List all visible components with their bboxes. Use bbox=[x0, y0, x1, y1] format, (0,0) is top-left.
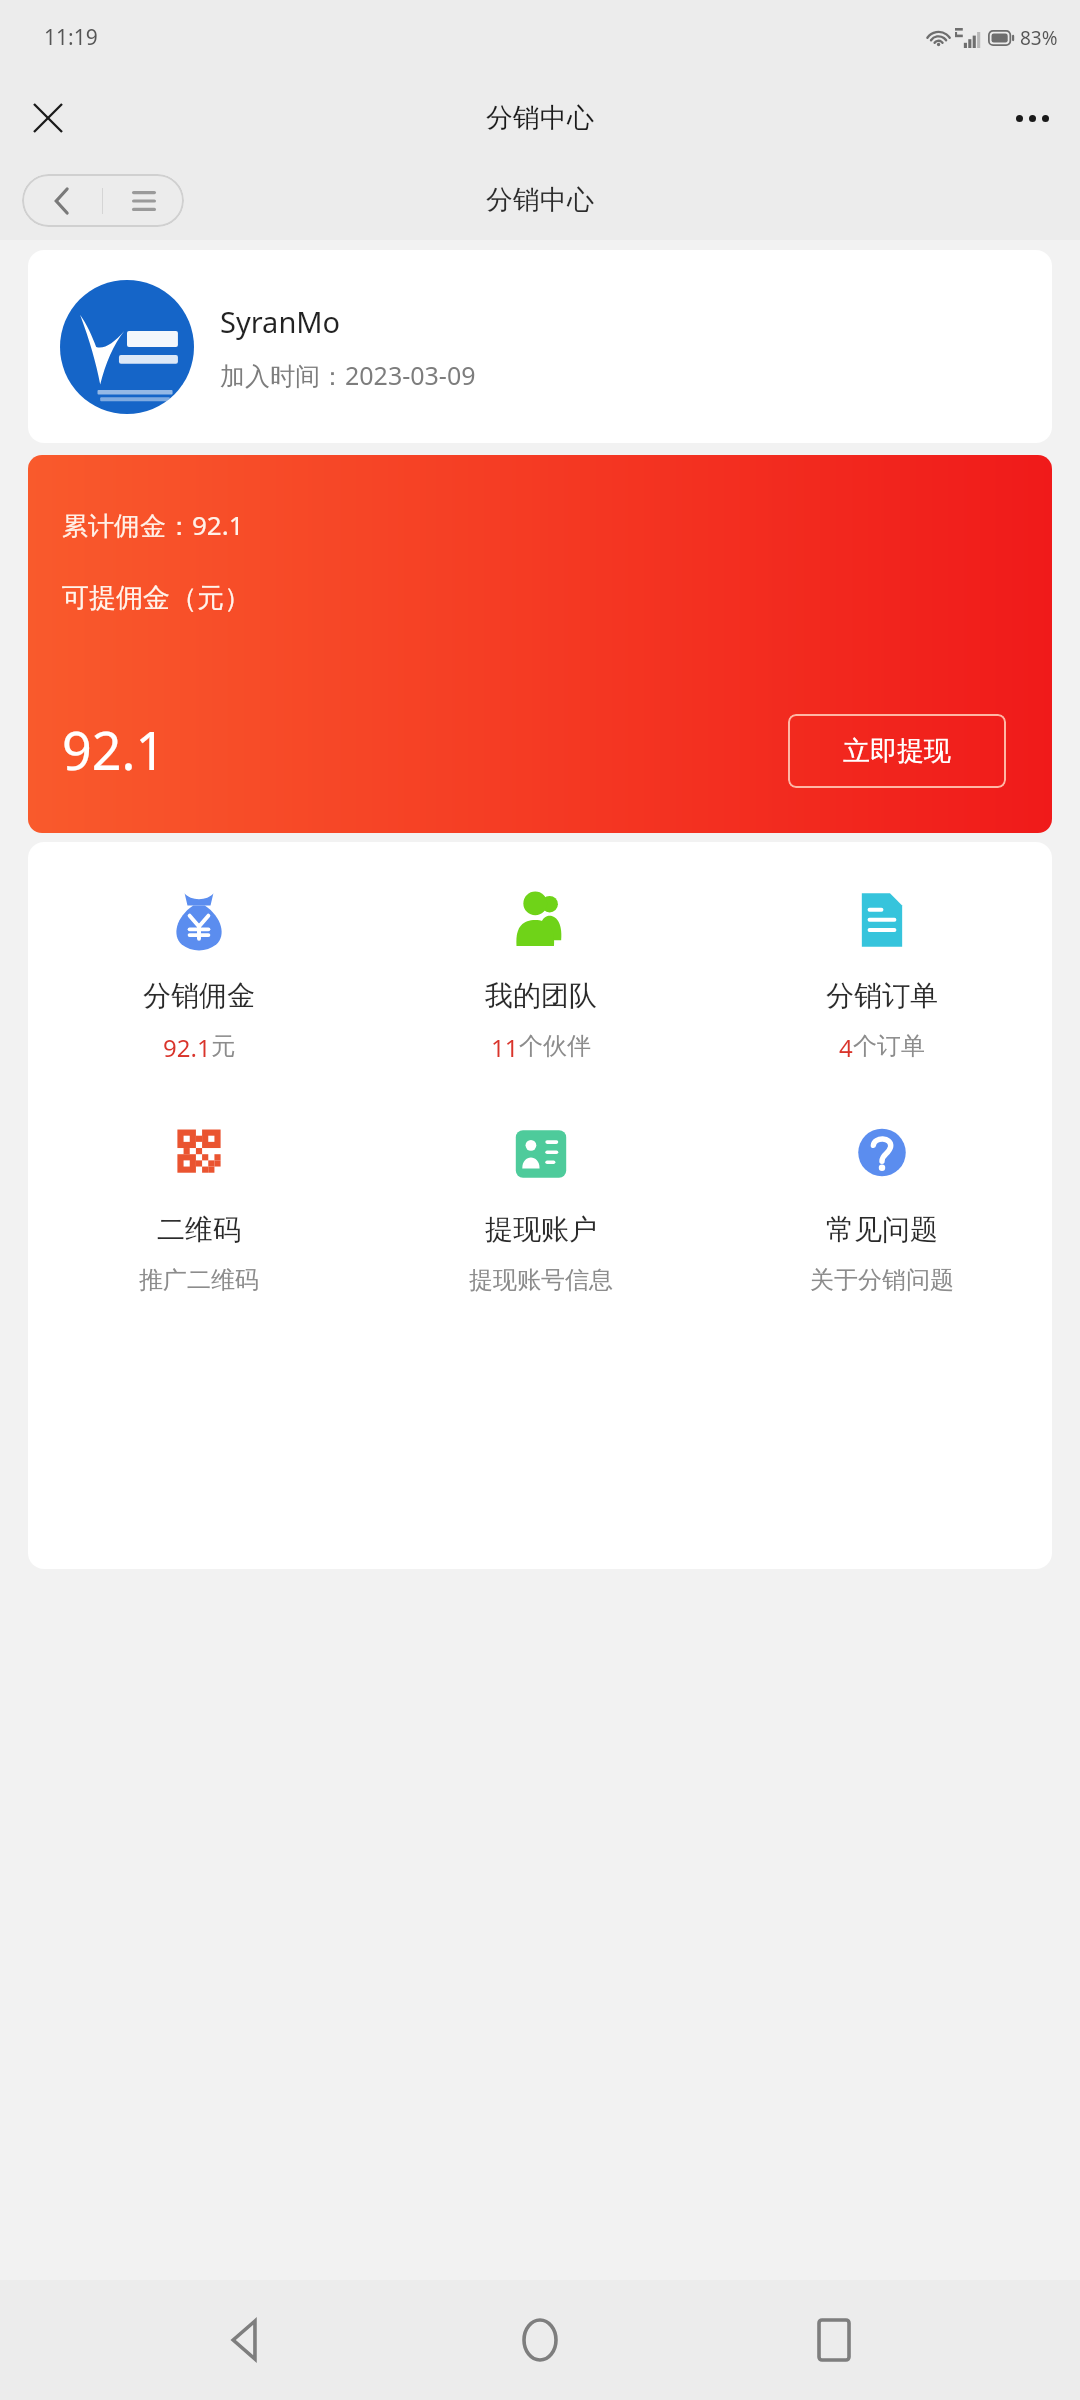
button[interactable]: Home bbox=[492, 2292, 588, 2388]
button[interactable]: 分销订单 bbox=[711, 884, 1052, 1064]
button[interactable]: 分销佣金 bbox=[28, 884, 370, 1064]
staticText: 立即提现 bbox=[843, 734, 951, 768]
staticText: 加入时间：2023-03-09 bbox=[220, 358, 476, 392]
staticText: 分销订单 bbox=[826, 978, 938, 1013]
staticText: 分销佣金 bbox=[143, 978, 255, 1013]
staticText: 分销中心 bbox=[486, 101, 594, 135]
button[interactable]: More options bbox=[1000, 86, 1064, 150]
staticText: 分销中心 bbox=[486, 183, 594, 217]
staticText: 个伙伴 bbox=[519, 1031, 591, 1061]
staticText: 提现账号信息 bbox=[469, 1265, 613, 1295]
staticText: 累计佣金：92.1 bbox=[62, 507, 244, 543]
staticText: 11:19 bbox=[44, 23, 98, 52]
staticText: 11 bbox=[491, 1031, 519, 1064]
button[interactable]: Recents bbox=[786, 2292, 882, 2388]
staticText: 92.1 bbox=[62, 714, 166, 785]
staticText: 83% bbox=[1020, 25, 1058, 51]
button[interactable]: Back bbox=[198, 2292, 294, 2388]
button[interactable]: 常见问题 bbox=[711, 1118, 1052, 1295]
staticText: 4 bbox=[839, 1031, 853, 1064]
button[interactable]: Close bbox=[16, 86, 80, 150]
staticText: SyranMo bbox=[220, 302, 341, 341]
staticText: 个订单 bbox=[853, 1031, 925, 1061]
button[interactable]: 提现账户 bbox=[370, 1118, 711, 1295]
staticText: 92.1 bbox=[163, 1031, 211, 1064]
button[interactable]: SyranMo bbox=[28, 250, 1052, 443]
staticText: 元 bbox=[211, 1031, 235, 1061]
staticText: 二维码 bbox=[157, 1212, 241, 1247]
staticText: 推广二维码 bbox=[139, 1265, 259, 1295]
staticText: 可提佣金（元） bbox=[62, 581, 251, 615]
staticText: 我的团队 bbox=[485, 978, 597, 1013]
staticText: 关于分销问题 bbox=[810, 1265, 954, 1295]
staticText: 提现账户 bbox=[485, 1212, 597, 1247]
staticText: 常见问题 bbox=[826, 1212, 938, 1247]
button[interactable]: 我的团队 bbox=[370, 884, 711, 1064]
button[interactable]: 立即提现 bbox=[788, 714, 1006, 788]
button[interactable]: Navigation bbox=[22, 174, 184, 227]
button[interactable]: 二维码 bbox=[28, 1118, 370, 1295]
